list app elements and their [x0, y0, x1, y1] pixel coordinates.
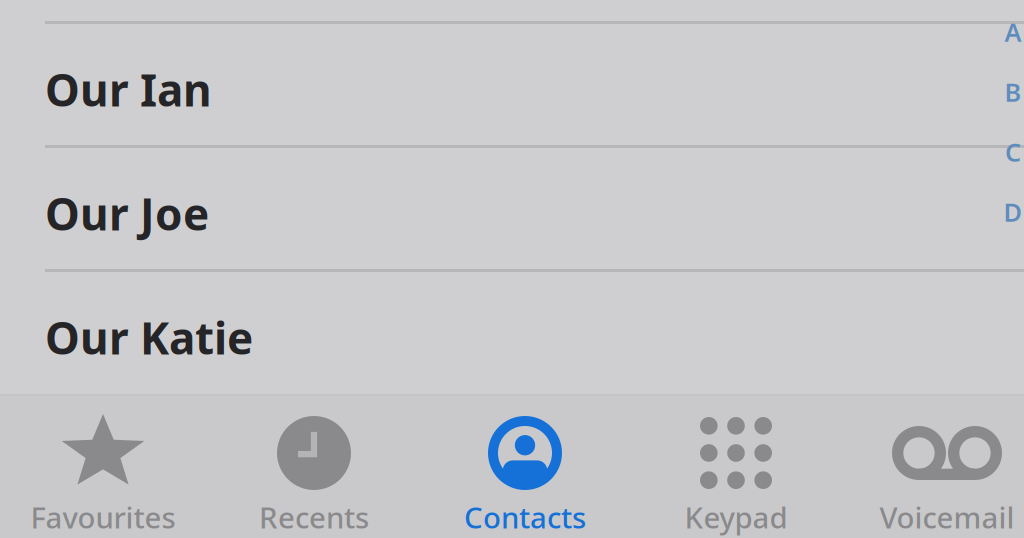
button[interactable]: Our Ian — [0, 24, 1024, 145]
button[interactable]: Our Katie — [0, 272, 1024, 393]
staticText: Contacts — [464, 497, 586, 536]
staticText: C — [1005, 135, 1021, 169]
staticText: Keypad — [684, 497, 787, 536]
button[interactable]: Voicemail — [841, 396, 1024, 538]
button[interactable]: Keypad — [630, 396, 841, 538]
staticText: B — [1004, 75, 1021, 109]
staticText: Voicemail — [879, 497, 1014, 536]
button[interactable]: Our Joe — [0, 148, 1024, 269]
staticText: D — [1003, 195, 1022, 229]
button[interactable]: Favourites — [0, 396, 208, 538]
staticText: Our Ian — [45, 60, 212, 119]
staticText: A — [1004, 15, 1021, 49]
staticText: Recents — [259, 497, 369, 536]
staticText: Our Joe — [45, 184, 209, 243]
button[interactable]: Contacts — [419, 396, 630, 538]
staticText: Our Katie — [45, 308, 253, 367]
staticText: Favourites — [30, 497, 175, 536]
button[interactable]: Recents — [208, 396, 419, 538]
